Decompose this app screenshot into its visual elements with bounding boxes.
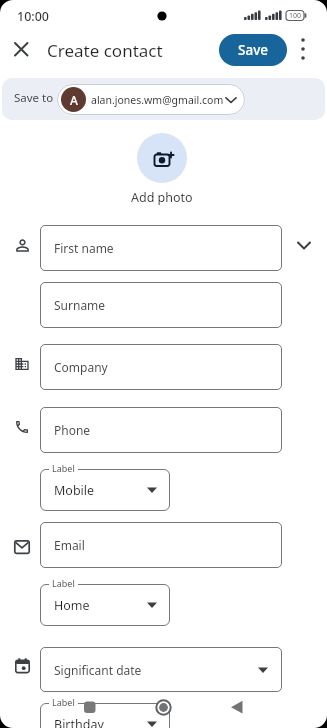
button[interactable] (137, 133, 187, 183)
staticText: A (70, 92, 78, 108)
button[interactable] (292, 234, 316, 258)
button[interactable]: First name (40, 225, 282, 271)
button[interactable] (294, 40, 312, 58)
button[interactable]: Phone (40, 407, 282, 453)
staticText: Phone (54, 422, 91, 438)
button[interactable]: Company (40, 344, 282, 390)
staticText: Create contact (47, 39, 163, 62)
staticText: Label (52, 462, 75, 474)
button[interactable]: Significant date (40, 647, 282, 692)
staticText: 10:00 (17, 8, 50, 25)
button[interactable]: Birthday (40, 703, 170, 728)
staticText: alan.jones.wm@gmail.com (91, 93, 224, 107)
button[interactable]: Surname (40, 282, 282, 328)
staticText: 100 (289, 11, 302, 21)
staticText: Surname (54, 297, 106, 313)
button[interactable]: Mobile (40, 469, 170, 511)
staticText: Email (54, 537, 85, 553)
staticText: Home (54, 597, 90, 614)
staticText: First name (54, 240, 114, 256)
staticText: Label (52, 696, 75, 708)
button[interactable]: Save (219, 34, 287, 66)
button[interactable]: Home (40, 584, 170, 626)
staticText: Add photo (131, 189, 193, 206)
button[interactable] (10, 37, 34, 61)
button[interactable]: A (57, 84, 245, 115)
staticText: Significant date (54, 662, 142, 678)
staticText: Company (54, 359, 108, 375)
staticText: Label (52, 577, 75, 589)
staticText: Mobile (54, 482, 95, 499)
staticText: Save to (14, 90, 54, 106)
staticText: Birthday (54, 716, 104, 728)
button[interactable]: Email (40, 522, 282, 568)
staticText: Save (238, 41, 269, 59)
